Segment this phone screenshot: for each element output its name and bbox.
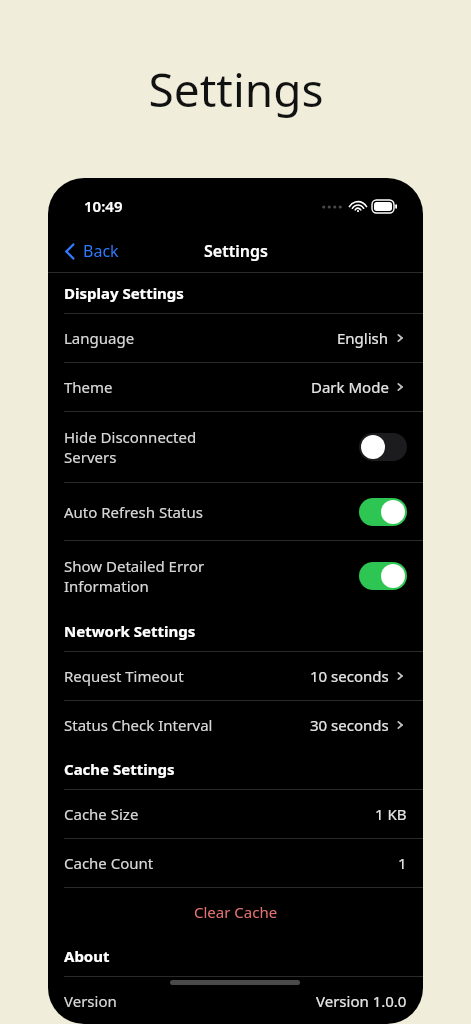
button[interactable]: Cache Size [48,790,423,838]
staticText: Request Timeout [64,666,184,686]
staticText: Back [83,240,119,262]
staticText: Servers [64,447,117,467]
staticText: Settings [148,58,324,121]
button[interactable]: Clear Cache [48,888,423,936]
staticText: Cache Size [64,804,139,824]
button[interactable]: Language [48,314,423,362]
button[interactable]: Version [48,977,423,1024]
staticText: English [337,328,389,348]
button[interactable]: Status Check Interval [48,701,423,749]
staticText: 10 seconds [310,666,389,686]
button[interactable]: Request Timeout [48,652,423,700]
staticText: Show Detailed Error [64,556,205,576]
button[interactable]: Theme [48,363,423,411]
staticText: Clear Cache [194,902,278,922]
button[interactable]: Show Detailed Error [48,541,423,611]
staticText: Version 1.0.0 [316,991,407,1011]
staticText: Theme [64,377,113,397]
staticText: Auto Refresh Status [64,502,203,522]
staticText: Hide Disconnected [64,427,197,447]
staticText: 10:49 [84,196,123,216]
staticText: Cache Settings [64,759,175,779]
staticText: Status Check Interval [64,715,213,735]
staticText: Settings [204,240,268,262]
staticText: Information [64,576,149,596]
staticText: Display Settings [64,283,184,303]
button[interactable]: Hide Disconnected [48,412,423,482]
button[interactable]: Back [48,230,127,272]
staticText: 1 KB [375,804,407,824]
staticText: Dark Mode [311,377,389,397]
staticText: About [64,946,110,966]
staticText: 1 [398,853,407,873]
staticText: Language [64,328,135,348]
button[interactable]: Toggle on [359,562,407,590]
button[interactable]: Cache Count [48,839,423,887]
button[interactable]: Toggle on [359,498,407,526]
staticText: Cache Count [64,853,154,873]
staticText: 30 seconds [310,715,389,735]
staticText: Network Settings [64,621,196,641]
staticText: Version [64,991,117,1011]
button[interactable]: Toggle off [359,433,407,461]
button[interactable]: Auto Refresh Status [48,483,423,540]
